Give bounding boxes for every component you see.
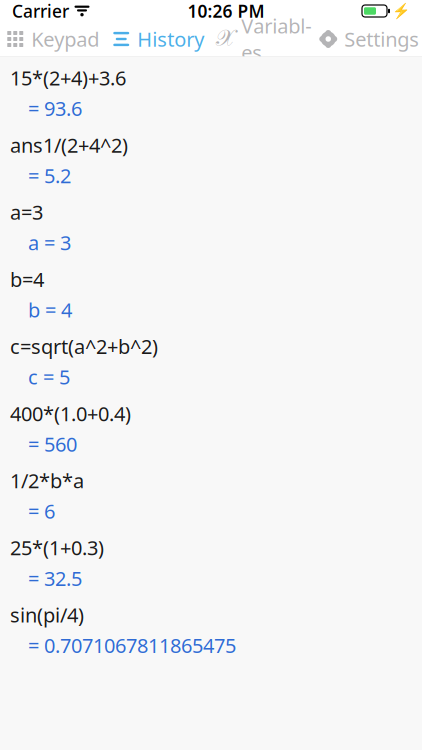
staticText: = 0.7071067811865475	[28, 632, 236, 659]
button[interactable]: 400*(1.0+0.4)	[0, 400, 422, 457]
staticText: b = 4	[28, 296, 72, 323]
staticText: c = 5	[28, 363, 70, 390]
staticText: = 6	[28, 498, 55, 524]
staticText: 25*(1+0.3)	[10, 534, 104, 561]
button[interactable]: b=4	[0, 266, 422, 323]
staticText: a = 3	[28, 229, 71, 256]
staticText: sin(pi/4)	[10, 601, 84, 628]
button[interactable]: Settings	[316, 22, 422, 56]
button[interactable]: Keypad	[0, 22, 105, 56]
button[interactable]: History	[105, 22, 211, 56]
staticText: a=3	[10, 199, 43, 225]
staticText: ⚡	[392, 3, 410, 19]
staticText: Keypad	[31, 26, 99, 52]
button[interactable]: ans1/(2+4^2)	[0, 132, 422, 189]
staticText: 1/2*b*a	[10, 467, 84, 494]
staticText: c=sqrt(a^2+b^2)	[10, 333, 158, 360]
staticText: 10:26 PM	[187, 0, 264, 22]
button[interactable]: 1/2*b*a	[0, 467, 422, 524]
button[interactable]: 15*(2+4)+3.6	[0, 64, 422, 122]
button[interactable]: 𝒳	[211, 22, 316, 56]
staticText: = 93.6	[28, 95, 82, 122]
staticText: = 560	[28, 431, 77, 457]
staticText: ans1/(2+4^2)	[10, 132, 128, 158]
staticText: Settings	[344, 26, 419, 52]
staticText: b=4	[10, 266, 44, 292]
button[interactable]: a=3	[0, 199, 422, 256]
staticText: History	[137, 26, 204, 52]
button[interactable]: 25*(1+0.3)	[0, 534, 422, 591]
staticText: 15*(2+4)+3.6	[10, 64, 126, 91]
staticText: 𝒳	[216, 28, 235, 50]
staticText: = 32.5	[28, 565, 82, 591]
staticText: Carrier	[12, 0, 69, 22]
button[interactable]: sin(pi/4)	[0, 601, 422, 659]
staticText: Variables	[241, 12, 311, 65]
button[interactable]: c=sqrt(a^2+b^2)	[0, 333, 422, 390]
staticText: 400*(1.0+0.4)	[10, 400, 131, 427]
staticText: = 5.2	[28, 162, 71, 189]
